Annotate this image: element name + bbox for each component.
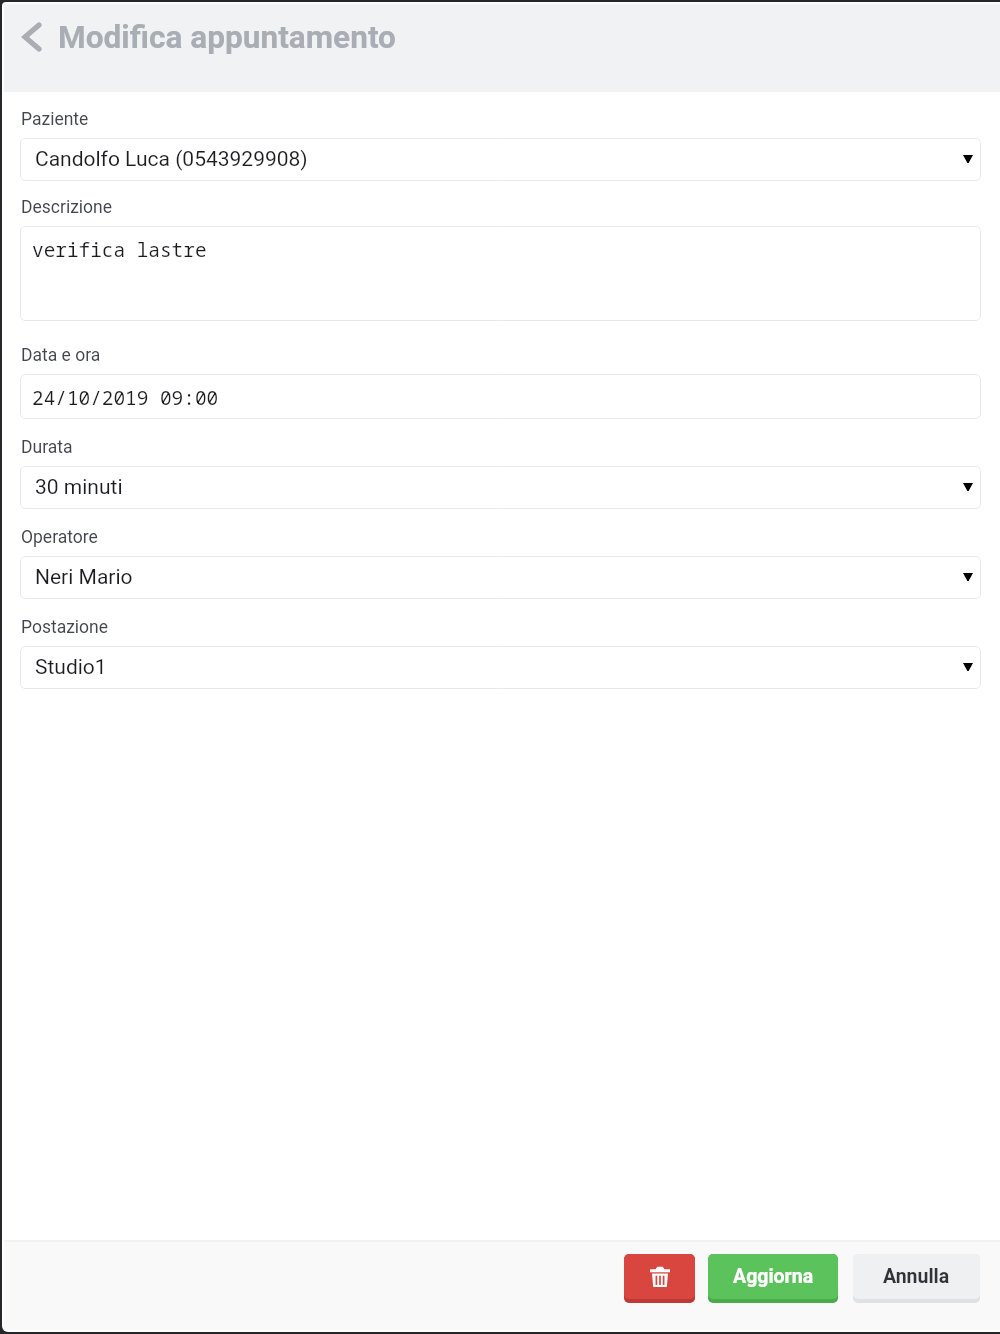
button[interactable]: Studio1 xyxy=(20,646,981,689)
button[interactable]: Indietro xyxy=(13,11,51,63)
button[interactable]: Aggiorna xyxy=(708,1254,838,1303)
button[interactable]: 30 minuti xyxy=(20,466,981,509)
staticText: Modifica appuntamento xyxy=(58,19,396,56)
staticText: Postazione xyxy=(21,617,109,638)
button[interactable]: 24/10/2019 09:00 xyxy=(20,374,981,419)
staticText: Descrizione xyxy=(21,197,113,218)
staticText: Neri Mario xyxy=(35,565,133,590)
staticText: Data e ora xyxy=(21,345,101,366)
staticText: verifica lastre xyxy=(32,236,207,262)
staticText: 30 minuti xyxy=(35,475,123,500)
staticText: 24/10/2019 09:00 xyxy=(32,384,219,410)
button[interactable]: Annulla xyxy=(853,1254,980,1303)
button[interactable]: Elimina xyxy=(624,1254,695,1303)
staticText: Studio1 xyxy=(35,655,107,680)
staticText: Aggiorna xyxy=(733,1265,814,1288)
staticText: Candolfo Luca (0543929908) xyxy=(35,147,308,172)
button[interactable]: Candolfo Luca (0543929908) xyxy=(20,138,981,181)
button[interactable]: verifica lastre xyxy=(20,226,981,321)
staticText: Durata xyxy=(21,437,73,458)
staticText: Paziente xyxy=(21,109,89,130)
button[interactable]: Neri Mario xyxy=(20,556,981,599)
staticText: Annulla xyxy=(883,1265,950,1288)
staticText: Operatore xyxy=(21,527,98,548)
